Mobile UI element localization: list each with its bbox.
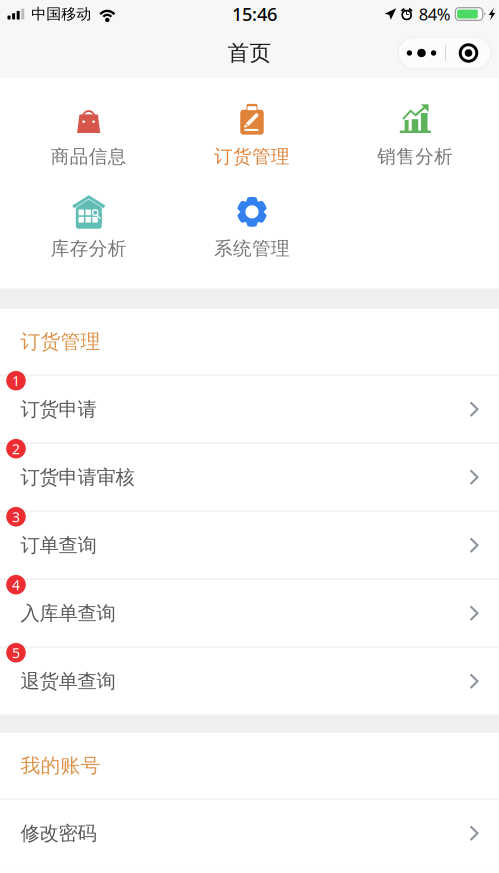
staticText: 商品信息 (51, 145, 127, 168)
staticText: 3 (12, 507, 20, 526)
staticText: 订货管理 (214, 145, 290, 168)
staticText: 库存分析 (51, 237, 127, 260)
button[interactable]: 订货申请 (0, 376, 499, 443)
staticText: 订货申请审核 (20, 465, 134, 489)
staticText: 84% (419, 3, 451, 25)
staticText: 1 (12, 371, 20, 390)
button[interactable]: 销售分析 (334, 103, 497, 168)
button[interactable]: 修改密码 (0, 800, 499, 867)
staticText: 5 (12, 643, 20, 662)
button[interactable]: 系统管理 (170, 195, 334, 260)
button[interactable]: 商品信息 (7, 103, 170, 168)
button[interactable]: 订货管理 (170, 103, 334, 168)
staticText: 15:46 (232, 2, 277, 26)
staticText: 首页 (227, 39, 271, 67)
staticText: 我的账号 (20, 753, 100, 778)
button[interactable]: 库存分析 (7, 195, 170, 260)
button[interactable]: More (398, 37, 445, 69)
staticText: 订货管理 (20, 329, 100, 354)
staticText: 中国移动 (31, 5, 91, 23)
staticText: 销售分析 (377, 145, 453, 168)
staticText: 入库单查询 (20, 601, 115, 625)
button[interactable]: 退货单查询 (0, 648, 499, 715)
staticText: 订单查询 (20, 533, 96, 557)
staticText: 系统管理 (214, 237, 290, 260)
button[interactable]: Close (446, 37, 491, 69)
staticText: 订货申请 (20, 397, 96, 421)
button[interactable]: 入库单查询 (0, 580, 499, 647)
staticText: 4 (12, 575, 20, 594)
button[interactable]: 订货申请审核 (0, 444, 499, 511)
staticText: 退货单查询 (20, 669, 115, 693)
staticText: 2 (12, 439, 20, 458)
staticText: 修改密码 (20, 821, 96, 845)
button[interactable]: 订单查询 (0, 512, 499, 579)
